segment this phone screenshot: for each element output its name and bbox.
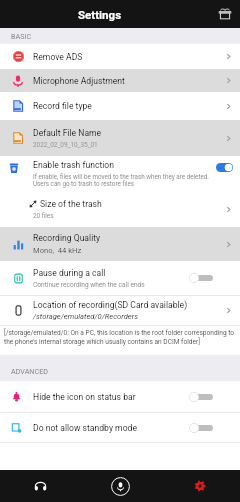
button[interactable]: Size of the trash: [0, 192, 240, 227]
staticText: If enable, files will be moved to the tr…: [33, 173, 210, 180]
staticText: Users can go to trash to restore files: [33, 180, 134, 187]
staticText: BASIC: [11, 32, 32, 40]
button[interactable]: Enable trash function: [0, 156, 240, 192]
button[interactable]: Record file type: [0, 92, 240, 120]
button[interactable]: Settings: [160, 470, 240, 502]
staticText: Microphone Adjustment: [33, 76, 125, 86]
staticText: /storage/emulated/0/Recorders: [33, 312, 139, 321]
staticText: ADVANCED: [11, 367, 48, 375]
button[interactable]: Recordings: [0, 470, 80, 502]
staticText: Mono, 44 kHz: [33, 246, 82, 255]
button[interactable]: Remove ads offer: [219, 8, 231, 20]
button[interactable]: Default File Name: [0, 120, 240, 156]
button[interactable]: Microphone Adjustment: [0, 69, 240, 92]
staticText: 20 files: [33, 212, 54, 220]
staticText: Record file type: [33, 101, 92, 111]
button[interactable]: Remove ADS: [0, 44, 240, 69]
button[interactable]: Recording Quality: [0, 227, 240, 261]
staticText: [/storage/emulated/0: On a PC, this loca…: [4, 329, 238, 345]
staticText: Continue recording when the call ends: [33, 281, 145, 289]
staticText: Pause during a call: [33, 268, 106, 278]
staticText: Enable trash function: [33, 160, 114, 170]
staticText: Size of the trash: [40, 199, 102, 209]
staticText: Hide the icon on status bar: [33, 392, 136, 402]
staticText: Settings: [78, 8, 122, 21]
button[interactable]: Location of recording(SD Card available): [0, 296, 240, 325]
staticText: Default File Name: [33, 128, 102, 138]
button[interactable]: Hide the icon on status bar: [0, 381, 240, 412]
button[interactable]: Pause during a call: [0, 261, 240, 295]
button[interactable]: Record: [80, 470, 160, 502]
staticText: Do not allow standby mode: [33, 423, 137, 433]
staticText: Remove ADS: [33, 52, 83, 62]
staticText: Recording Quality: [33, 233, 101, 243]
staticText: Location of recording(SD Card available): [33, 300, 188, 310]
staticText: 2022_02_09_10_35_01: [33, 141, 98, 149]
button[interactable]: Do not allow standby mode: [0, 413, 240, 442]
